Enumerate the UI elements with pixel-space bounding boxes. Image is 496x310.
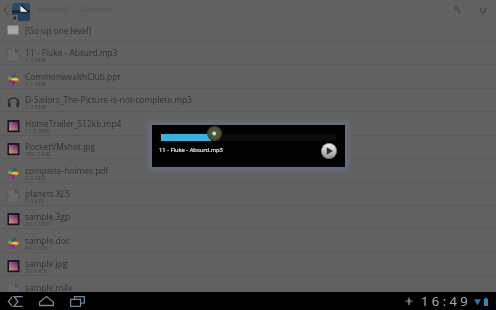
staticText: sample.m4v: [25, 282, 73, 293]
button[interactable]: planets.XLS: [0, 183, 496, 206]
button[interactable]: Refresh: [472, 0, 494, 19]
staticText: 30.7 KiB: [25, 267, 48, 275]
staticText: planets.XLS: [25, 188, 70, 199]
button[interactable]: [Go up one level]: [0, 19, 496, 42]
button[interactable]: Home: [32, 292, 60, 310]
button[interactable]: sample.doc: [0, 230, 496, 253]
staticText: 764.7 KiB: [25, 150, 51, 158]
staticText: sample.doc: [25, 235, 70, 246]
button[interactable]: complete-holmes.pdf: [0, 160, 496, 183]
staticText: 11.0 MiB: [25, 127, 50, 135]
staticText: [Go up one level]: [25, 25, 92, 36]
staticText: 94.0 KiB: [25, 244, 48, 252]
button[interactable]: Up: [0, 0, 12, 19]
staticText: 5.0 MiB: [25, 174, 46, 182]
button[interactable]: sample.m4v: [0, 277, 496, 300]
button[interactable]: sample.jpg: [0, 253, 496, 276]
button[interactable]: D-Sailors_The-Picture-is-not-complete.mp…: [0, 89, 496, 112]
button[interactable]: Recent apps: [63, 292, 91, 310]
staticText: sample.3gp: [25, 211, 71, 222]
staticText: 2.1 MiB: [25, 291, 46, 299]
staticText: D-Sailors_The-Picture-is-not-complete.mp…: [25, 94, 192, 105]
button[interactable]: sample.3gp: [0, 206, 496, 229]
staticText: 24.6 MiB: [25, 220, 50, 228]
staticText: 2.9 MiB: [25, 56, 46, 64]
button[interactable]: HomeTrailer_512kb.mp4: [0, 113, 496, 136]
staticText: PocketVM - /Samples/: [38, 5, 113, 15]
button[interactable]: Play: [321, 143, 337, 159]
button[interactable]: Settings: [447, 0, 469, 19]
staticText: 11 - Fluke - Absurd.mp3: [159, 146, 223, 154]
staticText: 5.1 MiB: [25, 80, 46, 88]
staticText: 2.4 MiB: [25, 103, 46, 111]
staticText: 7.5 KiB: [25, 197, 45, 205]
staticText: sample.jpg: [25, 258, 68, 269]
staticText: complete-holmes.pdf: [25, 165, 109, 176]
button[interactable]: CommonwealthClub.ppt: [0, 66, 496, 89]
button[interactable]: Back: [0, 292, 30, 310]
staticText: 16:49: [421, 292, 472, 310]
staticText: 11 - Fluke - Absurd.mp3: [25, 47, 118, 58]
staticText: HomeTrailer_512kb.mp4: [25, 118, 122, 129]
staticText: PocketVMshot.jpg: [25, 141, 95, 152]
button[interactable]: PocketVMshot.jpg: [0, 136, 496, 159]
button[interactable]: 11 - Fluke - Absurd.mp3: [0, 42, 496, 65]
staticText: CommonwealthClub.ppt: [25, 71, 121, 82]
